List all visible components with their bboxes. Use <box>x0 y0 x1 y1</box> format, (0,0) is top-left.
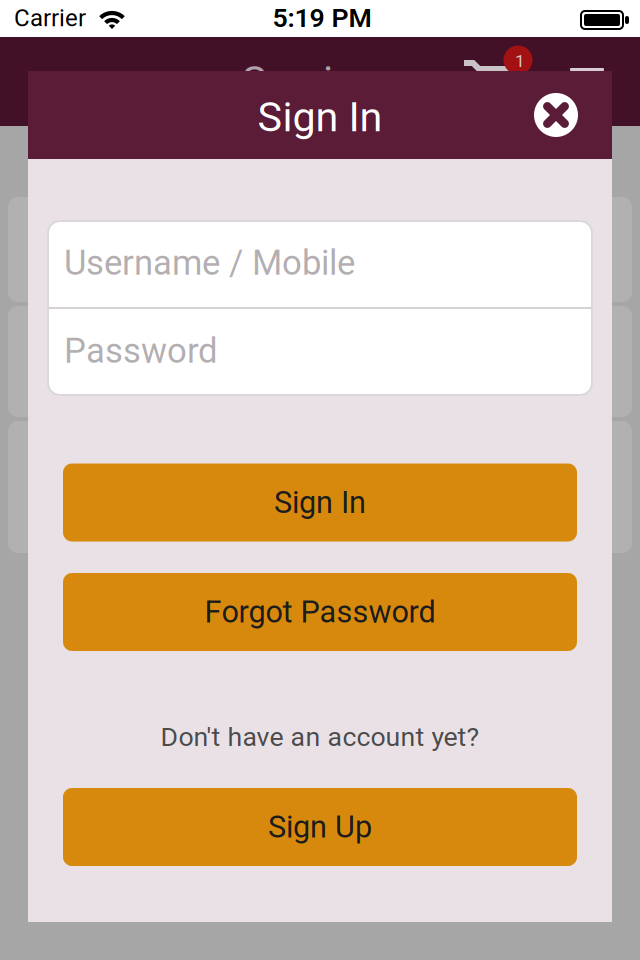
button[interactable]: Sign Up <box>63 788 577 866</box>
staticText: Services <box>242 57 398 105</box>
staticText: 1 <box>515 51 525 71</box>
staticText: Username / Mobile <box>64 243 355 283</box>
button[interactable]: Close <box>534 93 578 137</box>
staticText: 5:19 PM <box>272 2 371 34</box>
staticText: Sign In <box>274 484 366 520</box>
button[interactable]: Username / Mobile <box>48 220 592 306</box>
button[interactable]: Forgot Password <box>63 573 577 651</box>
staticText: Don't have an account yet? <box>160 721 479 753</box>
staticText: Password <box>64 331 218 371</box>
staticText: Sign In <box>257 93 382 141</box>
staticText: Sign Up <box>268 809 372 845</box>
button[interactable]: Password <box>48 308 592 394</box>
button[interactable]: Sign In <box>63 463 577 541</box>
staticText: Carrier <box>14 4 86 32</box>
staticText: Forgot Password <box>204 594 435 630</box>
